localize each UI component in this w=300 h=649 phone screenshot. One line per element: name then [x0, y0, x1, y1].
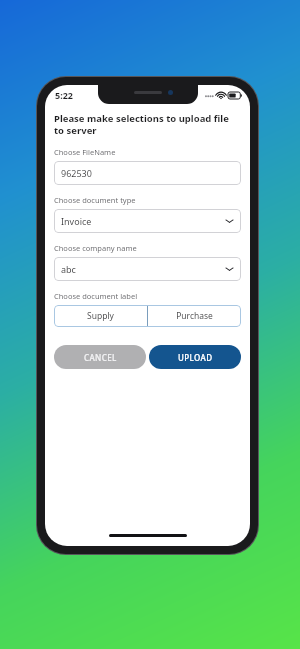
staticText: CANCEL — [84, 352, 117, 363]
button[interactable]: Supply — [54, 305, 147, 327]
staticText: 5:22 — [55, 89, 73, 101]
staticText: Purchase — [176, 310, 213, 322]
button[interactable]: CANCEL — [54, 345, 146, 369]
staticText: Choose FileName — [54, 147, 116, 157]
staticText: Choose document label — [54, 291, 138, 301]
staticText: Please make selections to upload file to… — [54, 112, 241, 137]
staticText: Choose document type — [54, 195, 136, 205]
button[interactable]: Purchase — [148, 305, 241, 327]
staticText: Supply — [87, 310, 114, 322]
staticText: abc — [61, 263, 225, 275]
staticText: UPLOAD — [178, 352, 213, 363]
staticText: 962530 — [61, 167, 92, 179]
button[interactable]: abc — [54, 257, 241, 281]
button[interactable]: Invoice — [54, 209, 241, 233]
staticText: Choose company name — [54, 243, 137, 253]
button[interactable]: UPLOAD — [149, 345, 241, 369]
button[interactable]: 962530 — [54, 161, 241, 185]
staticText: Invoice — [61, 215, 225, 227]
